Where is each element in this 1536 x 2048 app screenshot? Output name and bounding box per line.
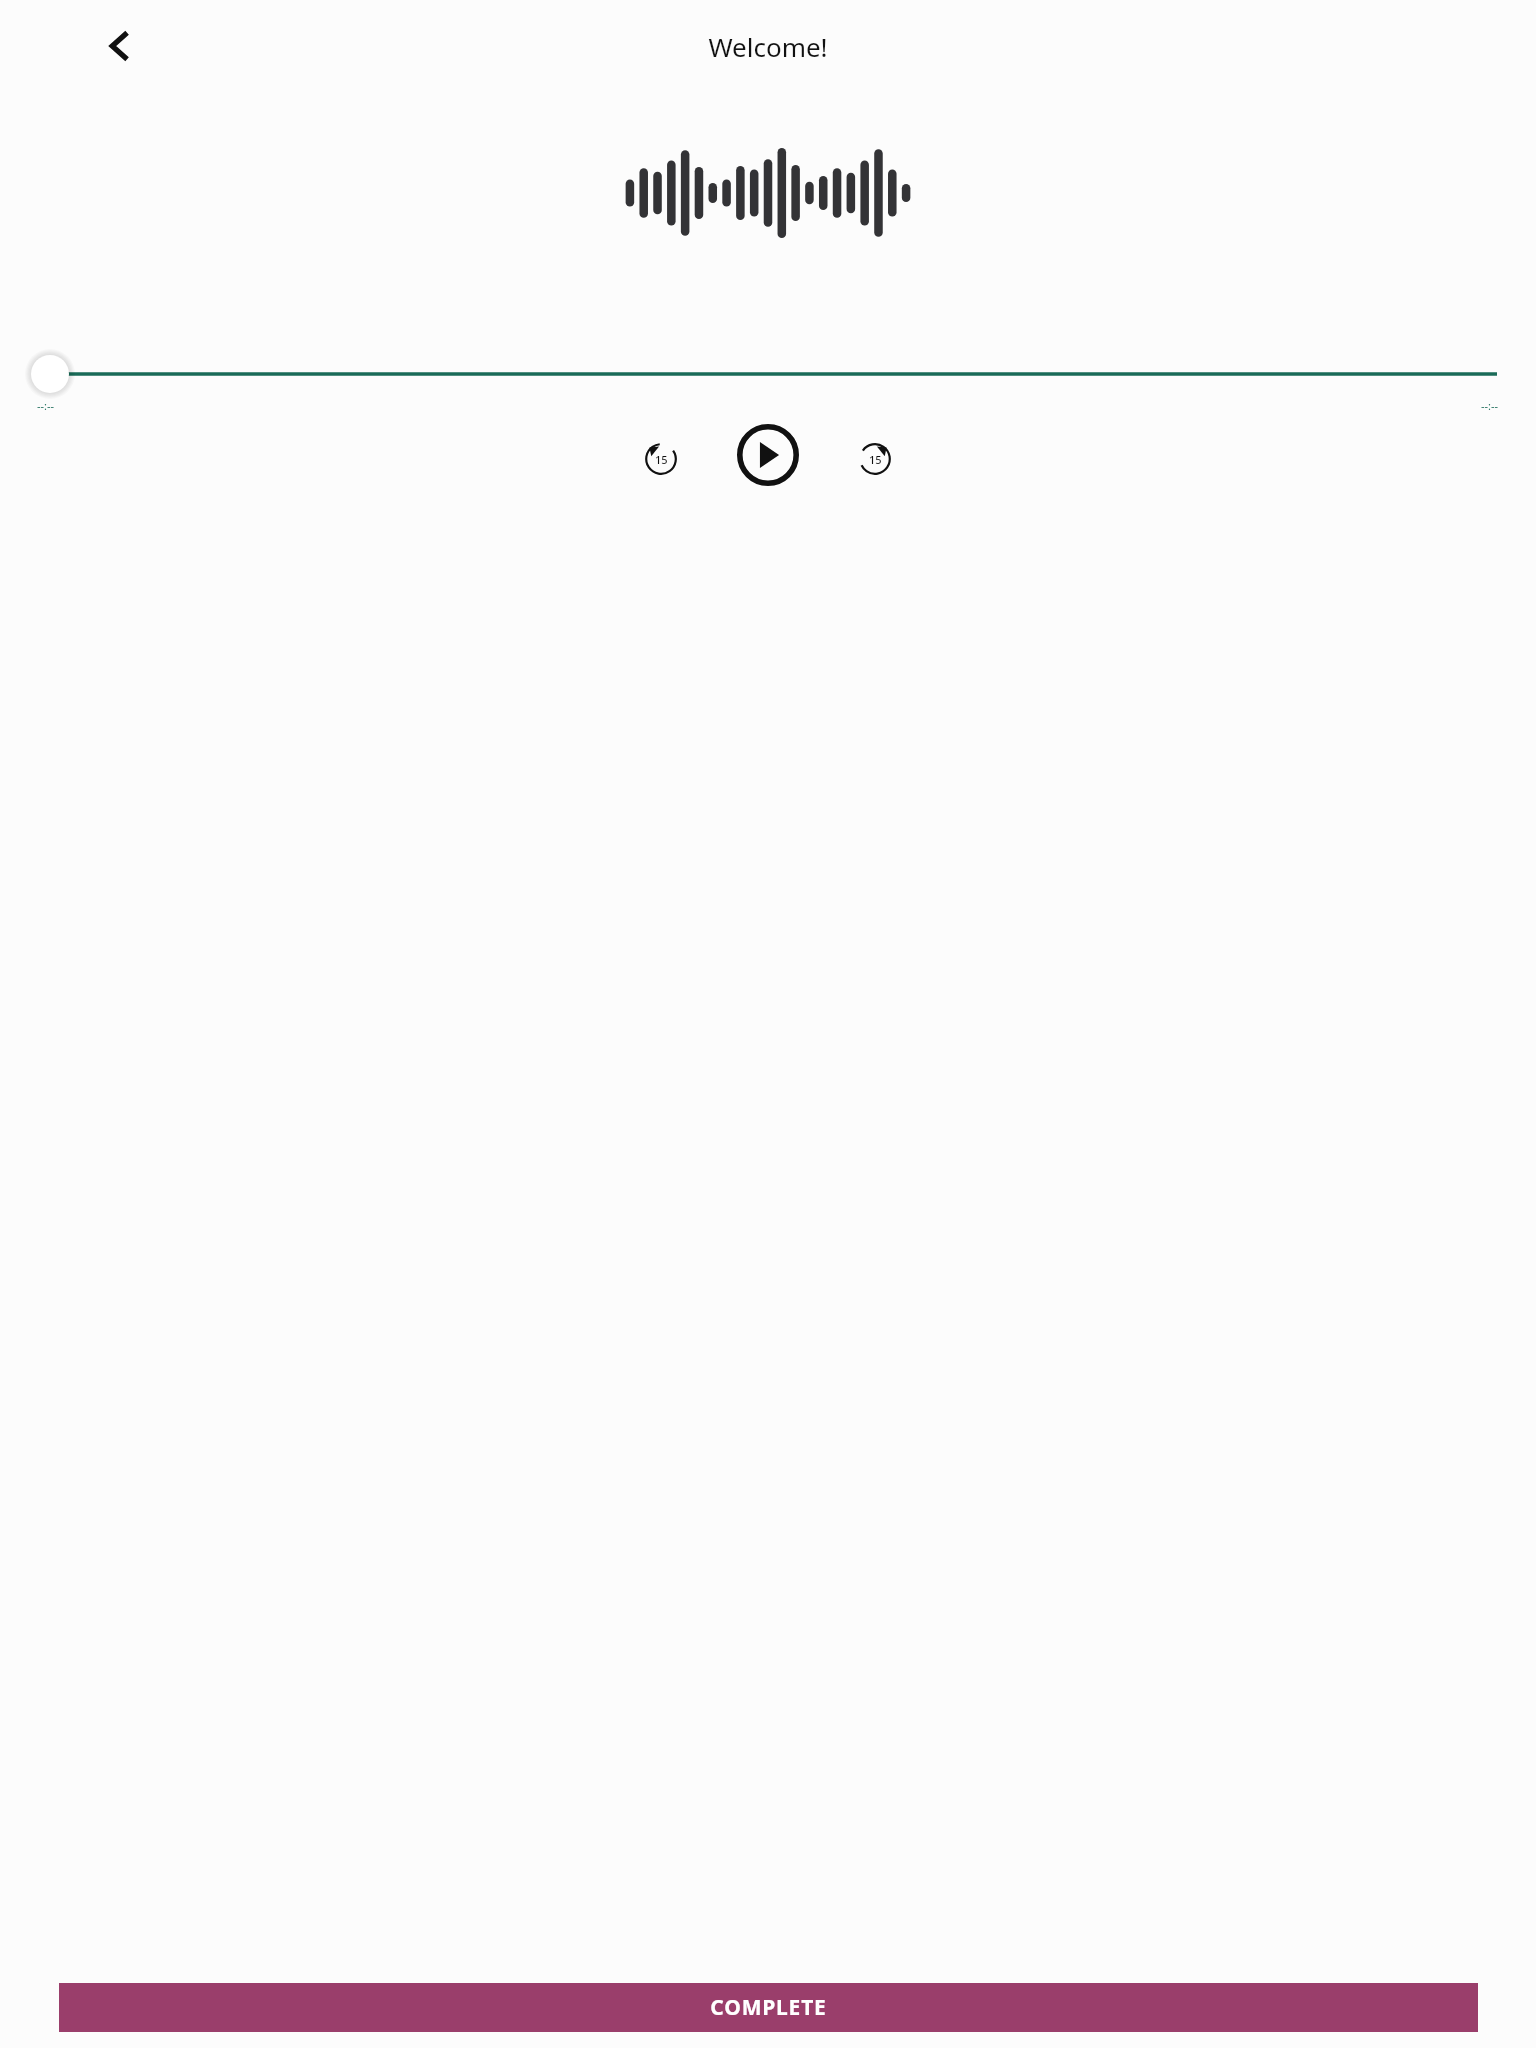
button[interactable]: COMPLETE — [59, 1983, 1478, 2032]
staticText: --:-- — [1481, 398, 1499, 413]
button[interactable]: Forward 15 seconds — [845, 429, 905, 489]
staticText: COMPLETE — [710, 1993, 827, 2022]
button[interactable]: Play — [726, 413, 810, 497]
button[interactable]: Seek bar — [0, 340, 1536, 400]
staticText: Welcome! — [708, 29, 828, 64]
button[interactable]: Back — [74, 1, 164, 91]
staticText: --:-- — [37, 398, 55, 413]
staticText: 15 — [655, 452, 668, 467]
button[interactable]: Rewind 15 seconds — [631, 429, 691, 489]
staticText: 15 — [869, 452, 882, 467]
